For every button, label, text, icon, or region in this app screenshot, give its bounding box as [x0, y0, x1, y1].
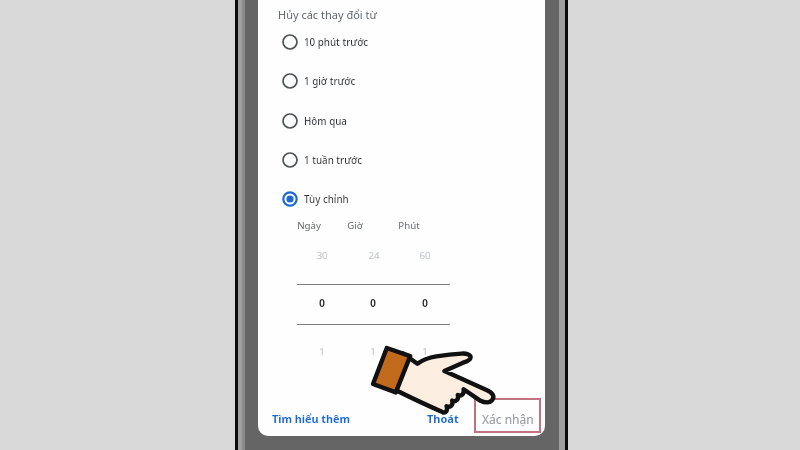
staticText: Ngày: [279, 219, 339, 232]
staticText: Giờ: [325, 219, 385, 232]
button[interactable]: Hôm qua: [258, 102, 545, 140]
button[interactable]: 1 tuần trước: [258, 141, 545, 179]
staticText: 0: [395, 296, 455, 310]
staticText: 30: [292, 249, 352, 262]
staticText: 1 tuần trước: [304, 154, 363, 167]
staticText: 0: [343, 296, 403, 310]
staticText: 0: [292, 296, 352, 310]
button[interactable]: Xác nhận: [478, 406, 538, 432]
staticText: Tìm hiểu thêm: [272, 411, 350, 426]
button[interactable]: 10 phút trước: [258, 23, 545, 61]
button[interactable]: Tùy chỉnh: [258, 180, 545, 218]
other: Tap pointer: [365, 338, 510, 428]
button[interactable]: 1 giờ trước: [258, 62, 545, 100]
staticText: 1 giờ trước: [304, 75, 356, 88]
staticText: Hủy các thay đổi từ: [278, 7, 377, 22]
button[interactable]: Thoát: [423, 406, 463, 431]
staticText: 1: [343, 345, 403, 358]
staticText: Phút: [379, 219, 439, 232]
staticText: 1: [292, 345, 352, 358]
staticText: Thoát: [427, 411, 459, 426]
staticText: Xác nhận: [482, 411, 534, 427]
staticText: 60: [395, 249, 455, 262]
button[interactable]: Tìm hiểu thêm: [268, 406, 354, 431]
staticText: Hôm qua: [304, 115, 347, 128]
staticText: 10 phút trước: [304, 36, 369, 49]
staticText: 1: [395, 345, 455, 358]
staticText: 24: [344, 249, 404, 262]
staticText: Tùy chỉnh: [304, 193, 349, 206]
